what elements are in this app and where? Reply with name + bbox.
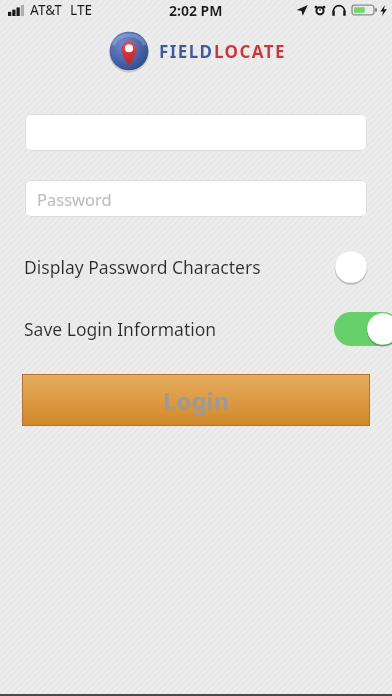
- staticText: Save Login Information: [24, 317, 217, 341]
- button[interactable]: Display Password Characters toggle: [334, 249, 392, 285]
- staticText: LOCATE: [214, 40, 286, 63]
- button[interactable]: Save Login Information toggle: [334, 311, 392, 347]
- staticText: FIELD: [159, 40, 214, 63]
- button[interactable]: [25, 114, 367, 151]
- staticText: Display Password Characters: [24, 255, 261, 279]
- button[interactable]: Login: [22, 374, 370, 426]
- button[interactable]: Password: [25, 180, 367, 217]
- staticText: 2:02 PM: [169, 1, 223, 20]
- staticText: Password: [37, 188, 112, 210]
- staticText: LTE: [70, 1, 93, 19]
- staticText: Login: [163, 384, 230, 417]
- staticText: AT&T: [30, 1, 62, 19]
